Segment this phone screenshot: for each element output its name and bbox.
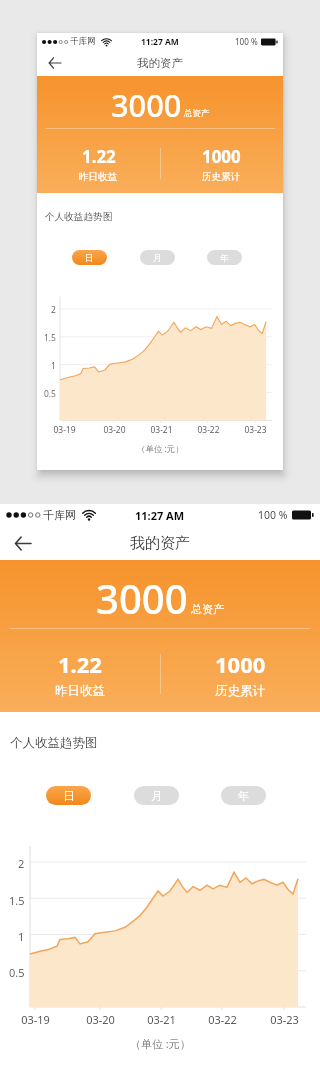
staticText: 日 (63, 789, 75, 803)
staticText: 总资产 (191, 602, 224, 616)
staticText: （单位 :元） (130, 1036, 191, 1051)
button[interactable]: 1.22 (37, 134, 160, 193)
button[interactable]: 月 (134, 786, 179, 805)
staticText: 0.5 (9, 965, 25, 980)
button[interactable]: 日 (46, 786, 91, 805)
button[interactable]: 1.22 (0, 635, 160, 712)
staticText: 1000 (202, 145, 241, 168)
staticText: 1000 (215, 649, 266, 679)
staticText: 千库网 (70, 36, 96, 47)
button[interactable] (10, 531, 34, 555)
staticText: 0.5 (44, 388, 56, 400)
staticText: 100 % (235, 36, 258, 47)
button[interactable]: 1000 (160, 635, 320, 712)
staticText: 100 % (258, 508, 288, 522)
staticText: 昨日收益 (55, 683, 105, 699)
staticText: 月 (153, 252, 162, 263)
staticText: 1.22 (58, 649, 102, 679)
staticText: 昨日收益 (79, 171, 118, 183)
button[interactable] (45, 54, 63, 72)
staticText: 03-19 (21, 1012, 50, 1027)
staticText: 月 (151, 789, 163, 803)
staticText: 千库网 (43, 508, 76, 522)
staticText: 1.22 (82, 145, 116, 168)
staticText: 11:27 AM (135, 508, 185, 523)
staticText: 1.5 (9, 893, 25, 908)
staticText: 03-22 (208, 1012, 237, 1027)
staticText: 1 (18, 929, 25, 944)
staticText: 个人收益趋势图 (10, 735, 98, 751)
staticText: 历史累计 (215, 683, 265, 699)
staticText: （单位 :元） (137, 443, 184, 455)
staticText: 1 (51, 360, 56, 372)
staticText: 03-22 (197, 424, 220, 436)
staticText: 03-19 (53, 424, 76, 436)
button[interactable]: 年 (221, 786, 266, 805)
staticText: 3000 (96, 571, 188, 625)
button[interactable]: 日 (72, 250, 107, 265)
staticText: 总资产 (184, 108, 210, 119)
staticText: 2 (18, 856, 25, 871)
button[interactable]: 月 (140, 250, 175, 265)
staticText: 1.5 (44, 332, 56, 344)
staticText: 03-21 (150, 424, 173, 436)
button[interactable]: 年 (207, 250, 242, 265)
staticText: 我的资产 (130, 534, 190, 553)
staticText: 03-20 (103, 424, 126, 436)
staticText: 03-23 (270, 1012, 299, 1027)
staticText: 11:27 AM (141, 36, 179, 48)
staticText: 3000 (111, 84, 182, 126)
staticText: 03-23 (244, 424, 267, 436)
staticText: 03-20 (86, 1012, 115, 1027)
staticText: 年 (238, 789, 250, 803)
staticText: 日 (85, 252, 94, 263)
staticText: 我的资产 (137, 56, 184, 71)
staticText: 年 (220, 252, 229, 263)
staticText: 2 (51, 304, 56, 316)
button[interactable]: 1000 (160, 134, 283, 193)
staticText: 个人收益趋势图 (45, 211, 113, 223)
staticText: 历史累计 (202, 171, 241, 183)
staticText: 03-21 (147, 1012, 176, 1027)
